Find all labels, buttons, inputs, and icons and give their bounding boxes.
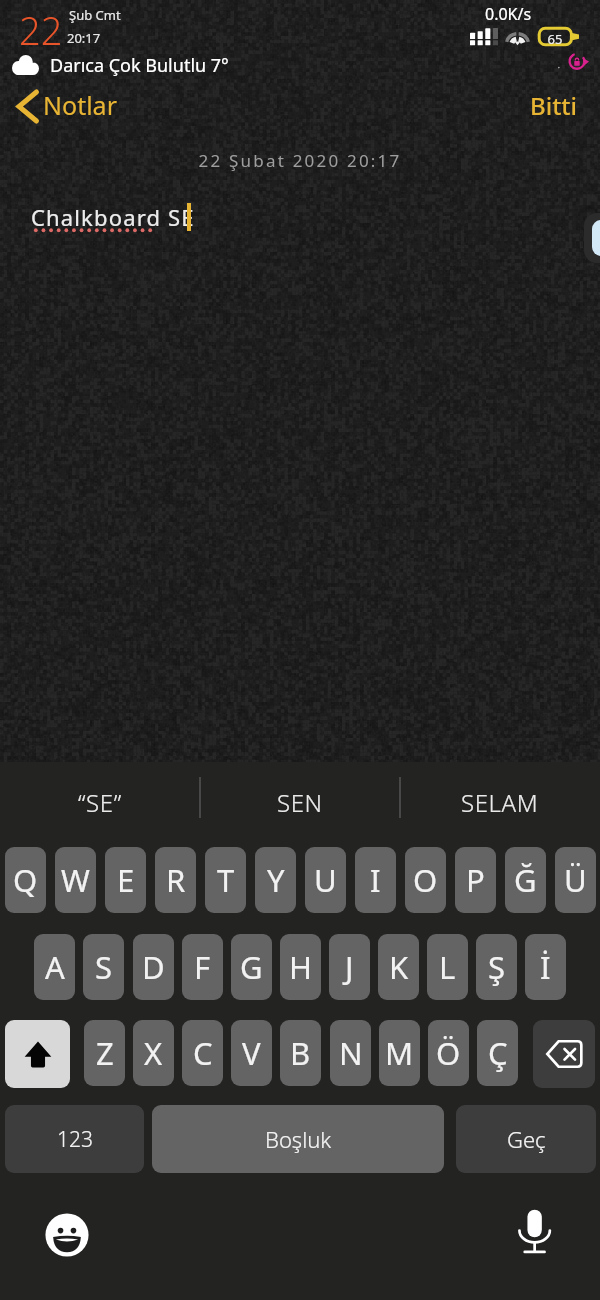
button[interactable]: T bbox=[205, 847, 246, 913]
staticText: K bbox=[389, 946, 409, 988]
staticText: Chalkboard SE bbox=[31, 202, 195, 232]
staticText: “SE” bbox=[78, 786, 122, 819]
button[interactable]: Bitti bbox=[512, 79, 600, 127]
staticText: A bbox=[45, 946, 65, 988]
staticText: J bbox=[345, 946, 354, 988]
staticText: B bbox=[290, 1032, 311, 1074]
button[interactable]: Ö bbox=[428, 1020, 469, 1086]
button[interactable]: “SE” bbox=[0, 762, 200, 838]
button[interactable]: Ü bbox=[555, 847, 596, 913]
button[interactable]: S bbox=[83, 934, 124, 1000]
button[interactable]: D bbox=[133, 934, 174, 1000]
staticText: M bbox=[385, 1032, 414, 1074]
staticText: W bbox=[61, 859, 90, 901]
button[interactable]: Y bbox=[255, 847, 296, 913]
button[interactable]: Notlar bbox=[6, 83, 129, 129]
button[interactable]: E bbox=[105, 847, 146, 913]
button[interactable]: F bbox=[182, 934, 223, 1000]
button[interactable]: K bbox=[378, 934, 419, 1000]
button[interactable]: G bbox=[231, 934, 272, 1000]
staticText: G bbox=[240, 946, 263, 988]
button[interactable]: I bbox=[355, 847, 396, 913]
staticText: Darıca Çok Bulutlu 7° bbox=[50, 53, 229, 78]
staticText: 22 Şubat 2020 20:17 bbox=[0, 149, 600, 172]
button[interactable]: 123 bbox=[5, 1105, 144, 1173]
button[interactable]: Z bbox=[84, 1020, 125, 1086]
staticText: İ bbox=[540, 946, 551, 988]
button[interactable]: İ bbox=[525, 934, 566, 1000]
staticText: N bbox=[339, 1032, 363, 1074]
staticText: 20:17 bbox=[67, 29, 101, 47]
button[interactable]: W bbox=[55, 847, 96, 913]
staticText: X bbox=[144, 1032, 163, 1074]
staticText: Ü bbox=[564, 859, 587, 901]
button[interactable]: J bbox=[329, 934, 370, 1000]
button[interactable]: M bbox=[379, 1020, 420, 1086]
button[interactable]: N bbox=[330, 1020, 371, 1086]
staticText: F bbox=[194, 946, 211, 988]
button[interactable]: O bbox=[405, 847, 446, 913]
button[interactable]: Boşluk bbox=[152, 1105, 444, 1173]
button[interactable]: Voice input bbox=[510, 1203, 560, 1263]
button[interactable]: V bbox=[231, 1020, 272, 1086]
staticText: I bbox=[370, 859, 381, 901]
staticText: 0.0K/s bbox=[485, 3, 532, 25]
staticText: Bitti bbox=[530, 89, 578, 117]
staticText: Q bbox=[13, 859, 38, 901]
button[interactable]: Emoji bbox=[43, 1211, 90, 1258]
staticText: O bbox=[413, 859, 438, 901]
button[interactable]: Ğ bbox=[505, 847, 546, 913]
button[interactable]: SEN bbox=[200, 762, 400, 838]
staticText: C bbox=[193, 1032, 213, 1074]
button[interactable]: Ş bbox=[476, 934, 517, 1000]
staticText: Y bbox=[267, 859, 285, 901]
button[interactable]: C bbox=[182, 1020, 223, 1086]
staticText: L bbox=[439, 946, 456, 988]
staticText: Ç bbox=[488, 1032, 508, 1074]
staticText: E bbox=[117, 859, 135, 901]
button[interactable]: Backspace bbox=[533, 1020, 595, 1088]
staticText: 123 bbox=[57, 1125, 93, 1154]
button[interactable]: B bbox=[280, 1020, 321, 1086]
staticText: Ş bbox=[488, 946, 506, 988]
staticText: H bbox=[289, 946, 312, 988]
button[interactable]: P bbox=[455, 847, 496, 913]
staticText: S bbox=[95, 946, 113, 988]
button[interactable]: SELAM bbox=[400, 762, 600, 838]
staticText: R bbox=[166, 859, 186, 901]
staticText: T bbox=[217, 859, 235, 901]
staticText: 65 bbox=[538, 30, 572, 48]
staticText: Boşluk bbox=[265, 1124, 332, 1154]
button[interactable]: Shift bbox=[5, 1020, 70, 1088]
button[interactable]: U bbox=[305, 847, 346, 913]
staticText: Şub Cmt bbox=[69, 6, 121, 24]
staticText: P bbox=[466, 859, 485, 901]
staticText: V bbox=[242, 1032, 261, 1074]
staticText: Ğ bbox=[514, 859, 537, 901]
button[interactable]: Side panel bbox=[584, 213, 600, 263]
staticText: Z bbox=[96, 1032, 114, 1074]
button[interactable]: Geç bbox=[456, 1105, 596, 1173]
button[interactable]: A bbox=[34, 934, 75, 1000]
staticText: SELAM bbox=[461, 786, 539, 819]
staticText: Ö bbox=[436, 1032, 461, 1074]
staticText: SEN bbox=[277, 786, 323, 819]
staticText: D bbox=[142, 946, 165, 988]
button[interactable]: R bbox=[155, 847, 196, 913]
staticText: Geç bbox=[507, 1124, 546, 1154]
button[interactable]: X bbox=[133, 1020, 174, 1086]
button[interactable]: Q bbox=[5, 847, 46, 913]
staticText: U bbox=[314, 859, 337, 901]
button[interactable]: H bbox=[280, 934, 321, 1000]
staticText: Notlar bbox=[43, 88, 117, 122]
staticText: 22 bbox=[19, 4, 63, 56]
button[interactable]: Ç bbox=[477, 1020, 518, 1086]
button[interactable]: L bbox=[427, 934, 468, 1000]
